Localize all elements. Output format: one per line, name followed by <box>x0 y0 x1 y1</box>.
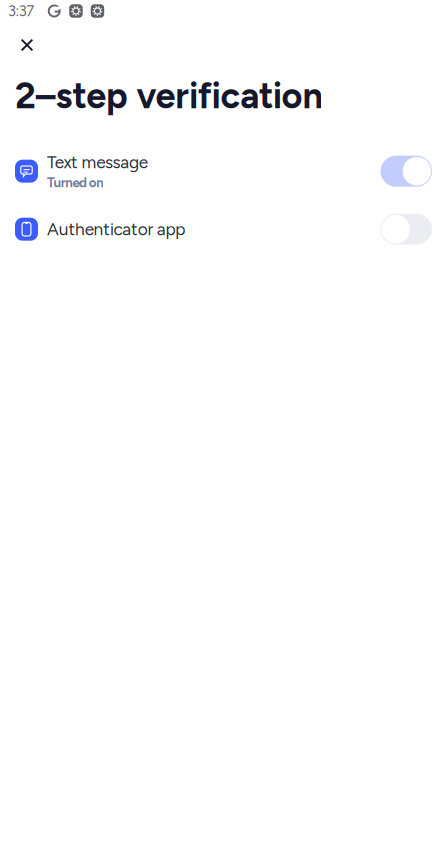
staticText: Text message <box>47 152 148 173</box>
button[interactable]: Text message <box>0 142 445 200</box>
staticText: Authenticator app <box>47 219 185 240</box>
staticText: 3:37 <box>8 2 34 20</box>
staticText: 2–step verification <box>15 74 322 117</box>
staticText: Turned on <box>47 175 104 191</box>
button[interactable]: Close <box>7 31 47 59</box>
button[interactable]: Authenticator app <box>0 200 445 258</box>
